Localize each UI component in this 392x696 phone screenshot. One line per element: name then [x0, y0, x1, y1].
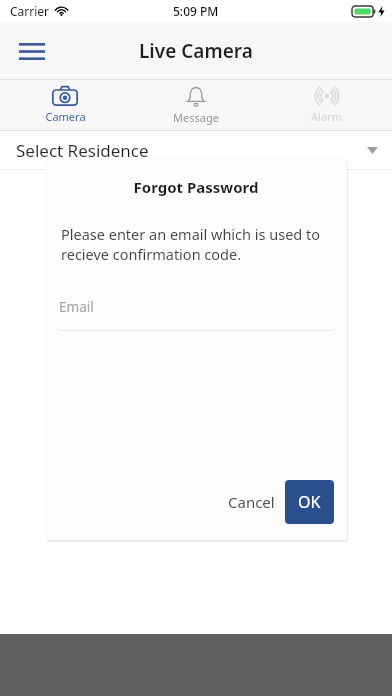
staticText: Alarm [311, 109, 342, 124]
button[interactable]: Message [130, 80, 261, 125]
staticText: Camera [45, 109, 86, 124]
staticText: Message [173, 110, 219, 125]
staticText: OK [298, 491, 321, 513]
staticText: Please enter an email which is used to r… [61, 224, 331, 265]
staticText: Live Camera [139, 38, 253, 64]
button[interactable]: OK [285, 480, 334, 524]
staticText: Cancel [228, 492, 275, 512]
staticText: Forgot Password [45, 177, 347, 197]
button[interactable]: Select Residence [0, 131, 392, 169]
staticText: 5:09 PM [173, 3, 219, 19]
button[interactable]: Menu [6, 25, 58, 77]
button[interactable]: Alarm [261, 80, 392, 124]
staticText: Carrier [10, 3, 50, 19]
button[interactable]: Camera [0, 80, 130, 124]
staticText: Select Residence [16, 139, 149, 162]
staticText: Email [59, 298, 94, 316]
button[interactable]: Cancel [220, 484, 283, 520]
